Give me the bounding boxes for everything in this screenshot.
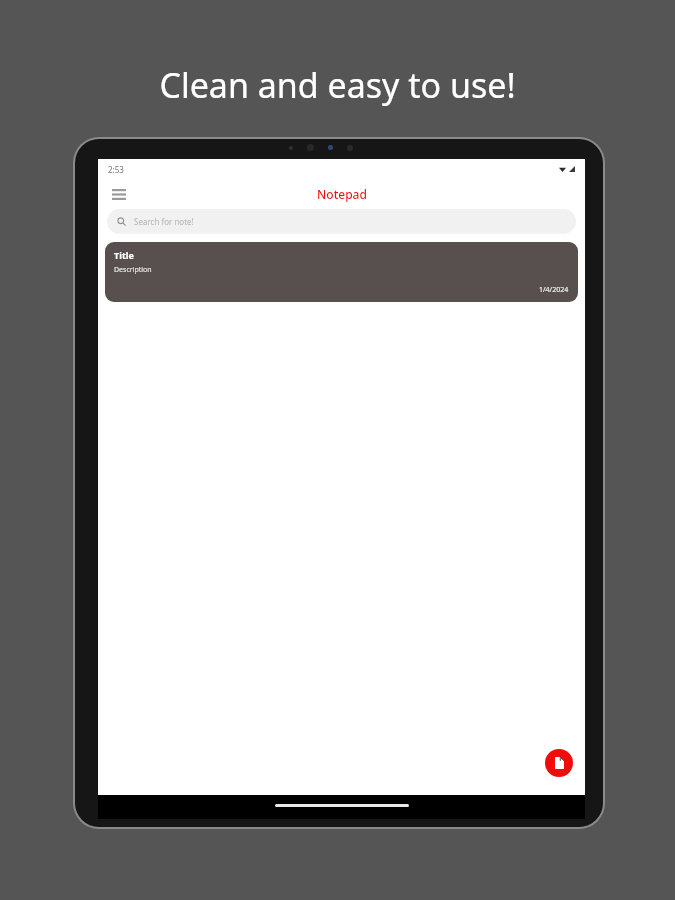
staticText: Title [114,249,134,261]
button[interactable]: Add note [545,749,573,777]
staticText: 2:53 [108,164,124,175]
staticText: Search for note! [134,216,194,227]
staticText: Description [114,265,152,275]
staticText: Notepad [317,186,367,202]
staticText: 1/4/2024 [539,285,569,295]
button[interactable]: Title [105,242,578,302]
button[interactable]: Search for note! [107,209,576,234]
staticText: Clean and easy to use! [159,62,516,108]
button[interactable]: Menu [106,181,132,207]
